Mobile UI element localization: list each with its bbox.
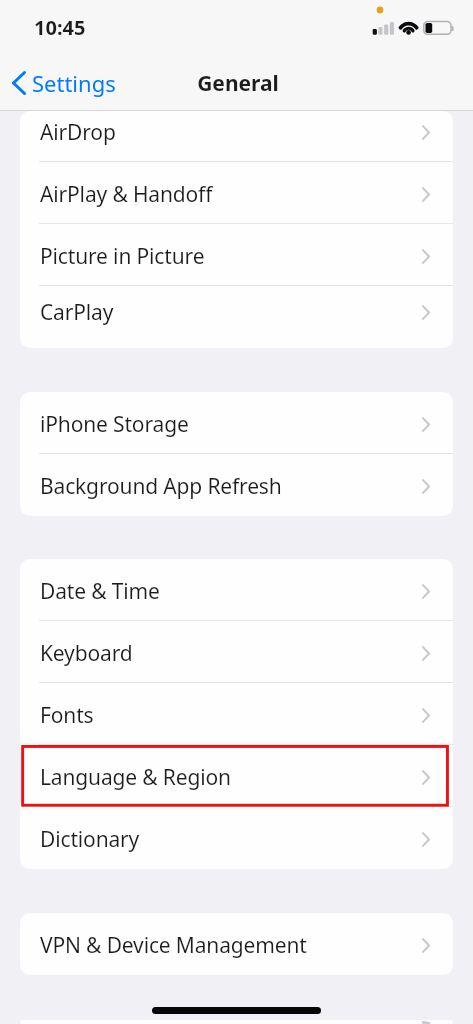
staticText: VPN & Device Management bbox=[40, 931, 307, 960]
staticText: Dictionary bbox=[40, 825, 140, 854]
button[interactable]: iPhone Storage bbox=[20, 392, 453, 454]
button[interactable]: AirPlay & Handoff bbox=[20, 162, 453, 224]
button[interactable]: AirDrop bbox=[20, 111, 453, 162]
staticText: Picture in Picture bbox=[40, 242, 205, 271]
button[interactable]: Language & Region bbox=[20, 745, 453, 807]
button[interactable]: Background App Refresh bbox=[20, 454, 453, 516]
staticText: Date & Time bbox=[40, 577, 160, 606]
staticText: Keyboard bbox=[40, 639, 133, 668]
staticText: AirDrop bbox=[40, 118, 116, 147]
button[interactable]: Back to Settings bbox=[12, 63, 116, 103]
button[interactable]: VPN & Device Management bbox=[20, 913, 453, 975]
button[interactable]: Legal & Regulatory bbox=[20, 1020, 453, 1024]
staticText: Background App Refresh bbox=[40, 472, 282, 501]
staticText: iPhone Storage bbox=[40, 410, 189, 439]
staticText: General bbox=[197, 69, 279, 98]
button[interactable]: Picture in Picture bbox=[20, 224, 453, 286]
staticText: AirPlay & Handoff bbox=[40, 180, 213, 209]
staticText: Language & Region bbox=[40, 763, 231, 792]
button[interactable]: Fonts bbox=[20, 683, 453, 745]
button[interactable]: CarPlay bbox=[20, 286, 453, 337]
staticText: Settings bbox=[32, 68, 116, 98]
staticText: CarPlay bbox=[40, 298, 114, 327]
staticText: 10:45 bbox=[34, 14, 86, 41]
button[interactable]: Keyboard bbox=[20, 621, 453, 683]
button[interactable]: Date & Time bbox=[20, 559, 453, 621]
button[interactable]: Dictionary bbox=[20, 807, 453, 869]
staticText: Fonts bbox=[40, 701, 94, 730]
